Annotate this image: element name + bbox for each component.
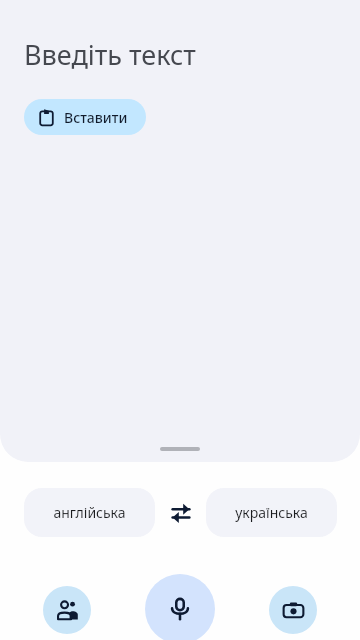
- button[interactable]: Вставити: [24, 99, 146, 135]
- button[interactable]: Microphone: [145, 574, 215, 640]
- staticText: Вставити: [64, 108, 128, 127]
- button[interactable]: українська: [206, 488, 337, 537]
- staticText: Введіть текст: [24, 36, 196, 73]
- button[interactable]: Conversation: [43, 586, 91, 634]
- staticText: англійська: [53, 503, 126, 522]
- button[interactable]: Camera: [269, 586, 317, 634]
- staticText: українська: [235, 503, 308, 522]
- button[interactable]: Swap languages: [155, 488, 206, 537]
- button[interactable]: Введіть текст: [0, 0, 360, 462]
- button[interactable]: англійська: [24, 488, 155, 537]
